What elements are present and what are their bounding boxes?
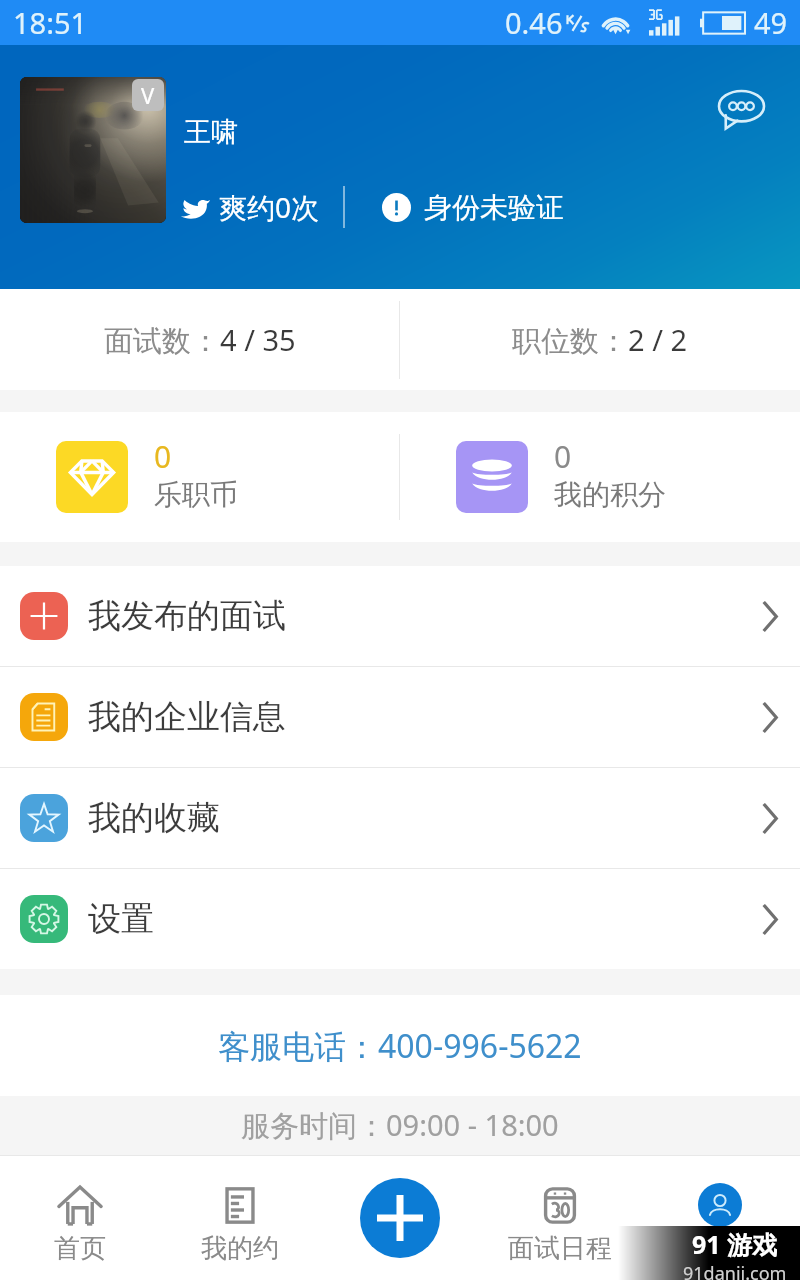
button[interactable]: 我的: [640, 1155, 800, 1280]
button[interactable]: 0: [400, 412, 800, 542]
staticText: 0: [154, 436, 172, 477]
staticText: 服务时间：09:00 - 18:00: [241, 1105, 559, 1145]
staticText: 爽约0次: [219, 188, 320, 226]
button[interactable]: 我发布的面试: [0, 566, 800, 666]
staticText: 客服电话：400-996-5622: [218, 1024, 582, 1068]
button[interactable]: 首页: [0, 1155, 160, 1280]
staticText: 面试日程: [508, 1232, 612, 1265]
button[interactable]: 0: [0, 412, 399, 542]
staticText: 49: [754, 3, 788, 42]
staticText: 0: [554, 436, 572, 477]
staticText: V: [141, 80, 155, 110]
staticText: 我的积分: [554, 477, 666, 512]
staticText: 身份未验证: [424, 190, 564, 225]
staticText: 首页: [54, 1232, 106, 1265]
staticText: 乐职币: [154, 477, 238, 512]
staticText: 职位数：2 / 2: [512, 320, 688, 360]
button[interactable]: V: [20, 77, 166, 223]
staticText: 我的企业信息: [88, 696, 286, 738]
staticText: 91 游戏: [692, 1227, 778, 1261]
button[interactable]: 设置: [0, 869, 800, 969]
staticText: 我发布的面试: [88, 595, 286, 637]
staticText: 我的: [694, 1231, 746, 1264]
staticText: 设置: [88, 898, 154, 940]
button[interactable]: 客服电话：400-996-5622: [0, 995, 800, 1096]
staticText: 我的约: [201, 1232, 279, 1265]
staticText: 面试数：4 / 35: [104, 320, 296, 360]
button[interactable]: 我的约: [160, 1155, 320, 1280]
staticText: 91danji.com: [683, 1261, 787, 1280]
staticText: 我的收藏: [88, 797, 220, 839]
button[interactable]: 面试数：4 / 35: [0, 289, 399, 390]
button[interactable]: 职位数：2 / 2: [400, 289, 800, 390]
staticText: 0.46: [505, 3, 563, 42]
staticText: 18:51: [13, 3, 88, 42]
button[interactable]: 我的收藏: [0, 768, 800, 868]
button[interactable]: 我的企业信息: [0, 667, 800, 767]
button[interactable]: Messages: [710, 79, 772, 141]
button[interactable]: Add: [360, 1178, 440, 1258]
button[interactable]: 面试日程: [480, 1155, 640, 1280]
staticText: 王啸: [184, 115, 238, 149]
